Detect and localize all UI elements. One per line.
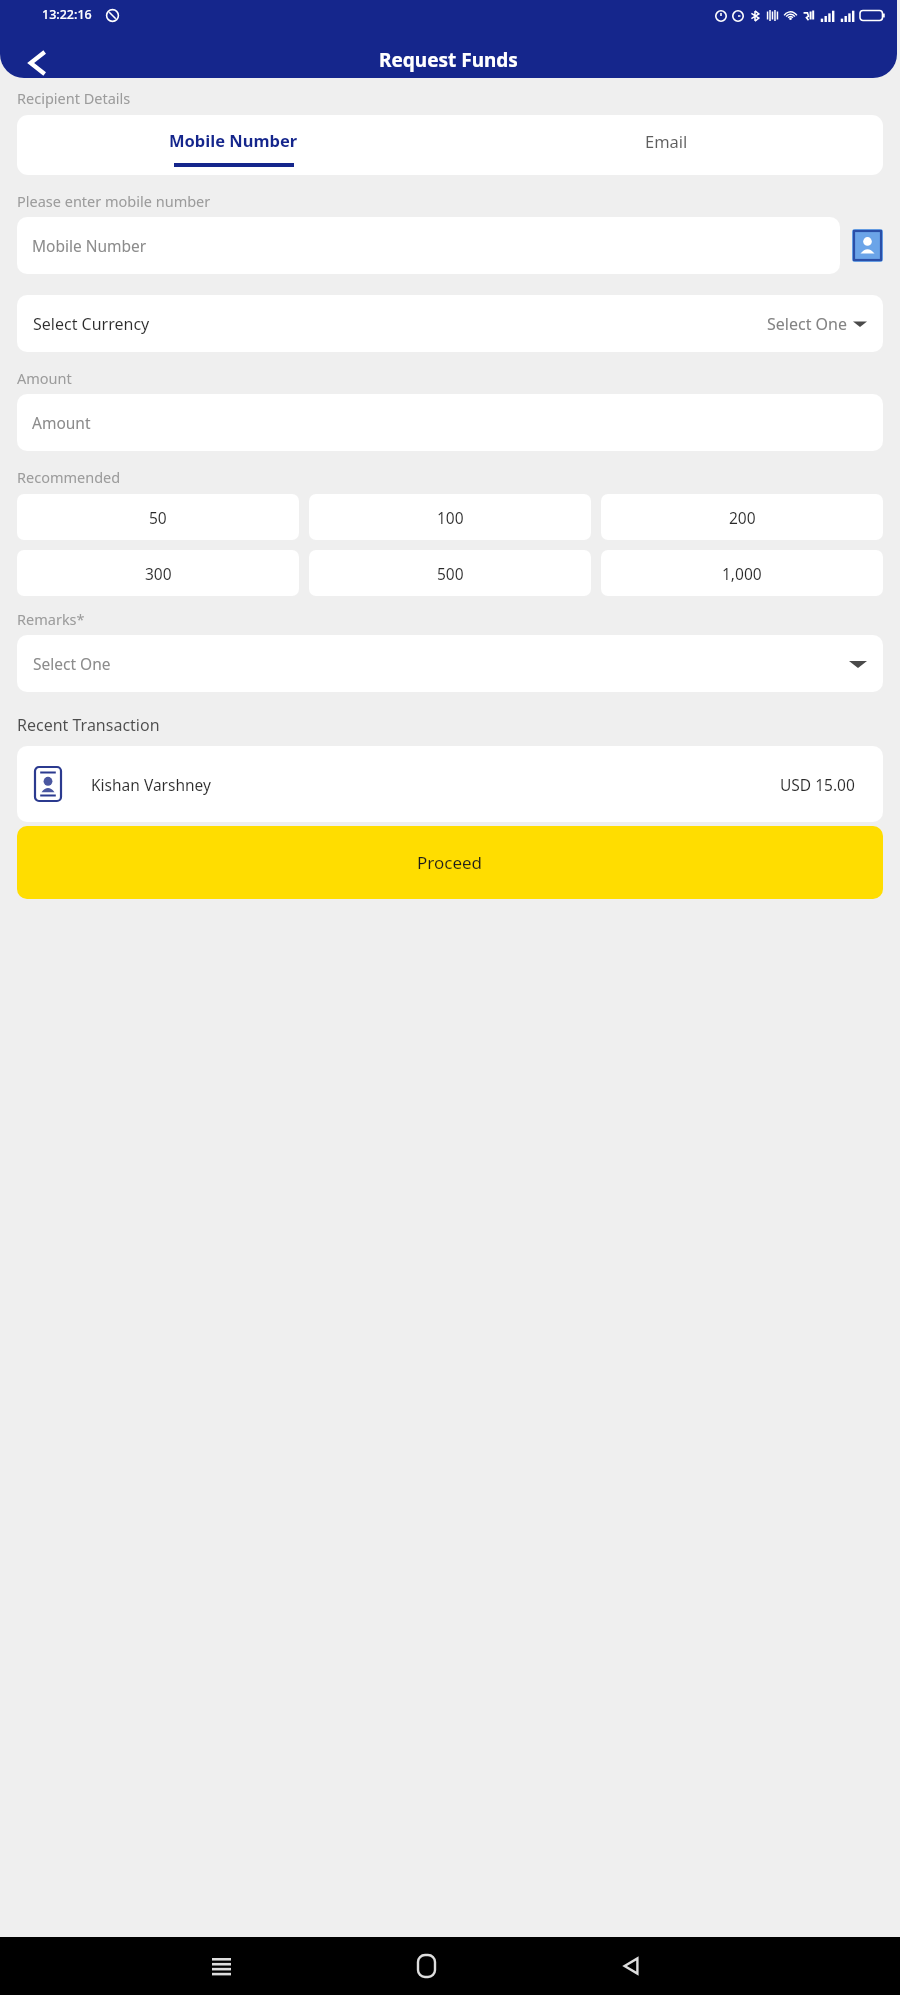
- staticText: Proceed: [417, 851, 483, 874]
- button[interactable]: Pick contact: [852, 229, 883, 262]
- button[interactable]: 200: [601, 494, 883, 540]
- staticText: 300: [145, 563, 172, 584]
- button[interactable]: Amount: [17, 394, 883, 451]
- button[interactable]: 1,000: [601, 550, 883, 596]
- button[interactable]: Back: [13, 41, 57, 78]
- staticText: Select One: [33, 653, 111, 674]
- staticText: 500: [437, 563, 464, 584]
- staticText: 50: [149, 507, 167, 528]
- button[interactable]: 50: [17, 494, 299, 540]
- staticText: Mobile Number: [32, 235, 147, 256]
- staticText: Please enter mobile number: [17, 191, 211, 211]
- staticText: Select One: [767, 313, 847, 335]
- button[interactable]: Home: [403, 1943, 449, 1989]
- button[interactable]: Proceed: [17, 826, 883, 899]
- staticText: Email: [645, 130, 688, 152]
- button[interactable]: Kishan Varshney: [17, 746, 883, 822]
- staticText: 100: [437, 507, 464, 528]
- button[interactable]: Select Currency: [17, 295, 883, 352]
- staticText: 13:22:16: [42, 6, 92, 23]
- button[interactable]: 300: [17, 550, 299, 596]
- staticText: Recommended: [17, 467, 121, 487]
- button[interactable]: Back: [608, 1943, 654, 1989]
- staticText: Request Funds: [379, 47, 518, 73]
- staticText: USD 15.00: [780, 774, 855, 795]
- button[interactable]: Mobile Number: [17, 217, 840, 274]
- staticText: 1,000: [722, 563, 762, 584]
- staticText: 200: [729, 507, 756, 528]
- staticText: Amount: [32, 412, 91, 433]
- staticText: Recipient Details: [17, 88, 131, 108]
- button[interactable]: Mobile Number: [17, 115, 450, 175]
- staticText: Kishan Varshney: [91, 774, 211, 795]
- other: Open remarks: [849, 655, 867, 673]
- button[interactable]: 500: [309, 550, 591, 596]
- button[interactable]: 100: [309, 494, 591, 540]
- button[interactable]: Recent apps: [198, 1943, 244, 1989]
- staticText: Remarks*: [17, 609, 85, 629]
- staticText: Mobile Number: [169, 129, 298, 151]
- staticText: Amount: [17, 368, 72, 388]
- button[interactable]: Select One: [17, 635, 883, 692]
- staticText: Recent Transaction: [17, 714, 160, 736]
- button[interactable]: Email: [450, 115, 883, 175]
- staticText: Select Currency: [33, 313, 150, 335]
